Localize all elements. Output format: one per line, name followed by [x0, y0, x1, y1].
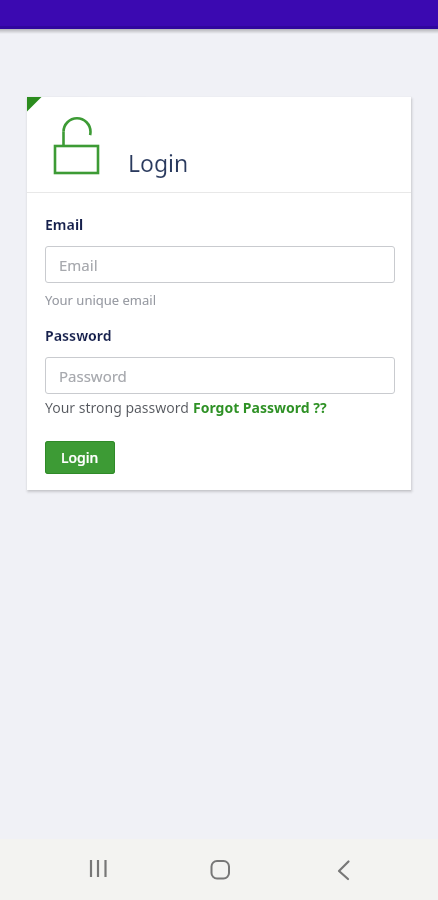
staticText: Email	[59, 255, 98, 275]
staticText: Password	[45, 326, 112, 345]
button[interactable]	[80, 850, 116, 886]
staticText: Email	[45, 215, 84, 234]
button[interactable]	[202, 850, 238, 886]
button[interactable]: Forgot Password ??	[193, 398, 327, 417]
staticText: Your strong password	[45, 398, 193, 417]
button[interactable]: Password	[45, 357, 395, 394]
button[interactable]: Login	[45, 441, 115, 474]
button[interactable]	[326, 850, 362, 886]
staticText: Login	[128, 147, 189, 178]
button[interactable]: Email	[45, 246, 395, 283]
staticText: Password	[59, 366, 127, 386]
staticText: Login	[61, 448, 99, 467]
staticText: Your unique email	[45, 291, 157, 309]
